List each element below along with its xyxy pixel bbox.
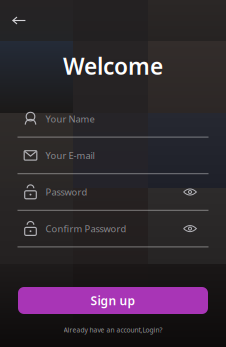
button[interactable]: Confirm Password [17, 211, 208, 247]
staticText: Your E-mail [45, 149, 94, 162]
staticText: Your Name [45, 113, 94, 125]
staticText: Password [45, 186, 87, 198]
button[interactable]: Already have an account,Login? [18, 320, 208, 340]
staticText: Already have an account,Login? [63, 326, 162, 334]
button[interactable]: Back [0, 5, 38, 35]
button[interactable]: Password [17, 174, 208, 211]
staticText: Confirm Password [45, 222, 126, 235]
button[interactable]: Your E-mail [17, 138, 208, 174]
button[interactable]: Sign up [18, 287, 208, 314]
staticText: Sign up [90, 292, 135, 308]
staticText: Welcome [63, 51, 163, 81]
button[interactable]: Your Name [17, 101, 208, 138]
